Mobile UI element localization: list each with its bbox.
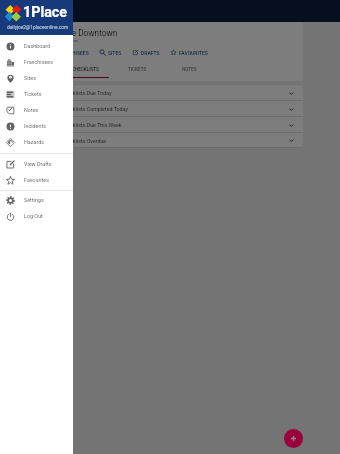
- staticText: Overview: [60, 38, 78, 43]
- staticText: FRANCHISEES: [56, 50, 89, 56]
- staticText: Tickets: [24, 91, 42, 97]
- button[interactable]: Tickets: [0, 86, 73, 102]
- button[interactable]: Settings: [0, 192, 73, 208]
- staticText: Favourites: [24, 177, 49, 183]
- button[interactable]: Checklists Due Today: [0, 85, 303, 101]
- button[interactable]: Checklists Due This Week: [0, 117, 303, 133]
- button[interactable]: CHECKLISTS: [59, 64, 111, 75]
- staticText: Checklists Completed Today: [61, 106, 128, 112]
- staticText: NOTES: [182, 67, 197, 72]
- staticText: SITES: [108, 50, 122, 56]
- button[interactable]: Add: [284, 429, 303, 448]
- staticText: Settings: [24, 197, 44, 203]
- button[interactable]: Checklists Completed Today: [0, 101, 303, 117]
- button[interactable]: Checklists Overdue: [0, 133, 303, 148]
- staticText: Checklists Due This Week: [61, 122, 122, 128]
- button[interactable]: DRAFTS: [127, 46, 165, 59]
- button[interactable]: Favourites: [0, 172, 73, 188]
- staticText: Sites: [24, 75, 36, 81]
- staticText: DRAFTS: [141, 50, 160, 56]
- button[interactable]: Dashboard: [0, 38, 73, 54]
- staticText: Hazards: [24, 139, 44, 145]
- button[interactable]: Log Out: [0, 208, 73, 224]
- staticText: Incidents: [24, 123, 46, 129]
- staticText: CHECKLISTS: [72, 67, 99, 72]
- staticText: Checklists Due Today: [61, 90, 112, 96]
- button[interactable]: FAVOURITES: [165, 46, 213, 59]
- button[interactable]: TICKETS: [111, 64, 163, 75]
- staticText: FAVOURITES: [179, 50, 208, 56]
- button[interactable]: View Drafts: [0, 156, 73, 172]
- button[interactable]: Notes: [0, 102, 73, 118]
- button[interactable]: NOTES: [163, 64, 215, 75]
- button[interactable]: FRANCHISEES: [42, 46, 94, 59]
- staticText: Log Out: [24, 213, 43, 219]
- button[interactable]: Hazards: [0, 134, 73, 150]
- staticText: Dashboard: [24, 43, 51, 49]
- staticText: View Drafts: [24, 161, 52, 167]
- staticText: TICKETS: [128, 67, 147, 72]
- staticText: 1Place: [23, 4, 68, 21]
- button[interactable]: Sites: [0, 70, 73, 86]
- staticText: Notes: [24, 107, 39, 113]
- staticText: Checklists Overdue: [61, 138, 107, 144]
- button[interactable]: Incidents: [0, 118, 73, 134]
- staticText: Cafe Downtown: [59, 28, 118, 38]
- button[interactable]: SITES: [94, 46, 127, 59]
- staticText: dailyjoe2@1placeonline.com: [7, 25, 69, 31]
- staticText: Franchisees: [24, 59, 53, 65]
- button[interactable]: Franchisees: [0, 54, 73, 70]
